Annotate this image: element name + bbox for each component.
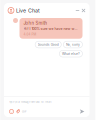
staticText: John Smith xyxy=(23,21,47,26)
staticText: Sounds Good xyxy=(38,43,59,46)
button[interactable]: Sounds Good xyxy=(35,41,61,48)
staticText: What else? xyxy=(62,52,80,56)
staticText: 4:04 PM xyxy=(23,33,36,36)
staticText: GIF xyxy=(22,110,27,113)
button[interactable]: What else? xyxy=(59,50,82,57)
button[interactable]: Minimise chat xyxy=(74,7,80,13)
button[interactable]: Close chat xyxy=(80,7,86,13)
button[interactable]: Send message xyxy=(79,109,84,114)
staticText: Type your message here and hit return xyxy=(9,100,51,104)
button[interactable]: No, sorry xyxy=(63,41,82,48)
staticText: Hi! I 100% sure we have new work for you… xyxy=(23,27,78,31)
button[interactable]: Insert GIF xyxy=(22,109,27,114)
button[interactable]: Attach a file xyxy=(15,109,20,114)
staticText: Live Chat xyxy=(16,7,40,14)
staticText: No, sorry xyxy=(66,43,80,46)
button[interactable]: Insert emoji xyxy=(9,109,14,114)
